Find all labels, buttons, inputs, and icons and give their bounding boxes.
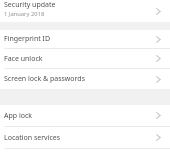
button[interactable]: Face unlock <box>0 49 170 68</box>
button[interactable]: Location services <box>0 127 170 148</box>
staticText: Location services <box>4 133 61 143</box>
button[interactable]: App lock <box>0 105 170 126</box>
staticText: 1 January 2018 <box>4 10 45 18</box>
staticText: Fingerprint ID <box>4 34 51 44</box>
staticText: App lock <box>4 111 33 121</box>
staticText: Screen lock & passwords <box>4 74 85 84</box>
staticText: Security update <box>4 0 56 10</box>
button[interactable]: Screen lock & passwords <box>0 69 170 89</box>
button[interactable]: Security update <box>0 0 170 22</box>
button[interactable]: Fingerprint ID <box>0 30 170 48</box>
staticText: Face unlock <box>4 54 43 64</box>
